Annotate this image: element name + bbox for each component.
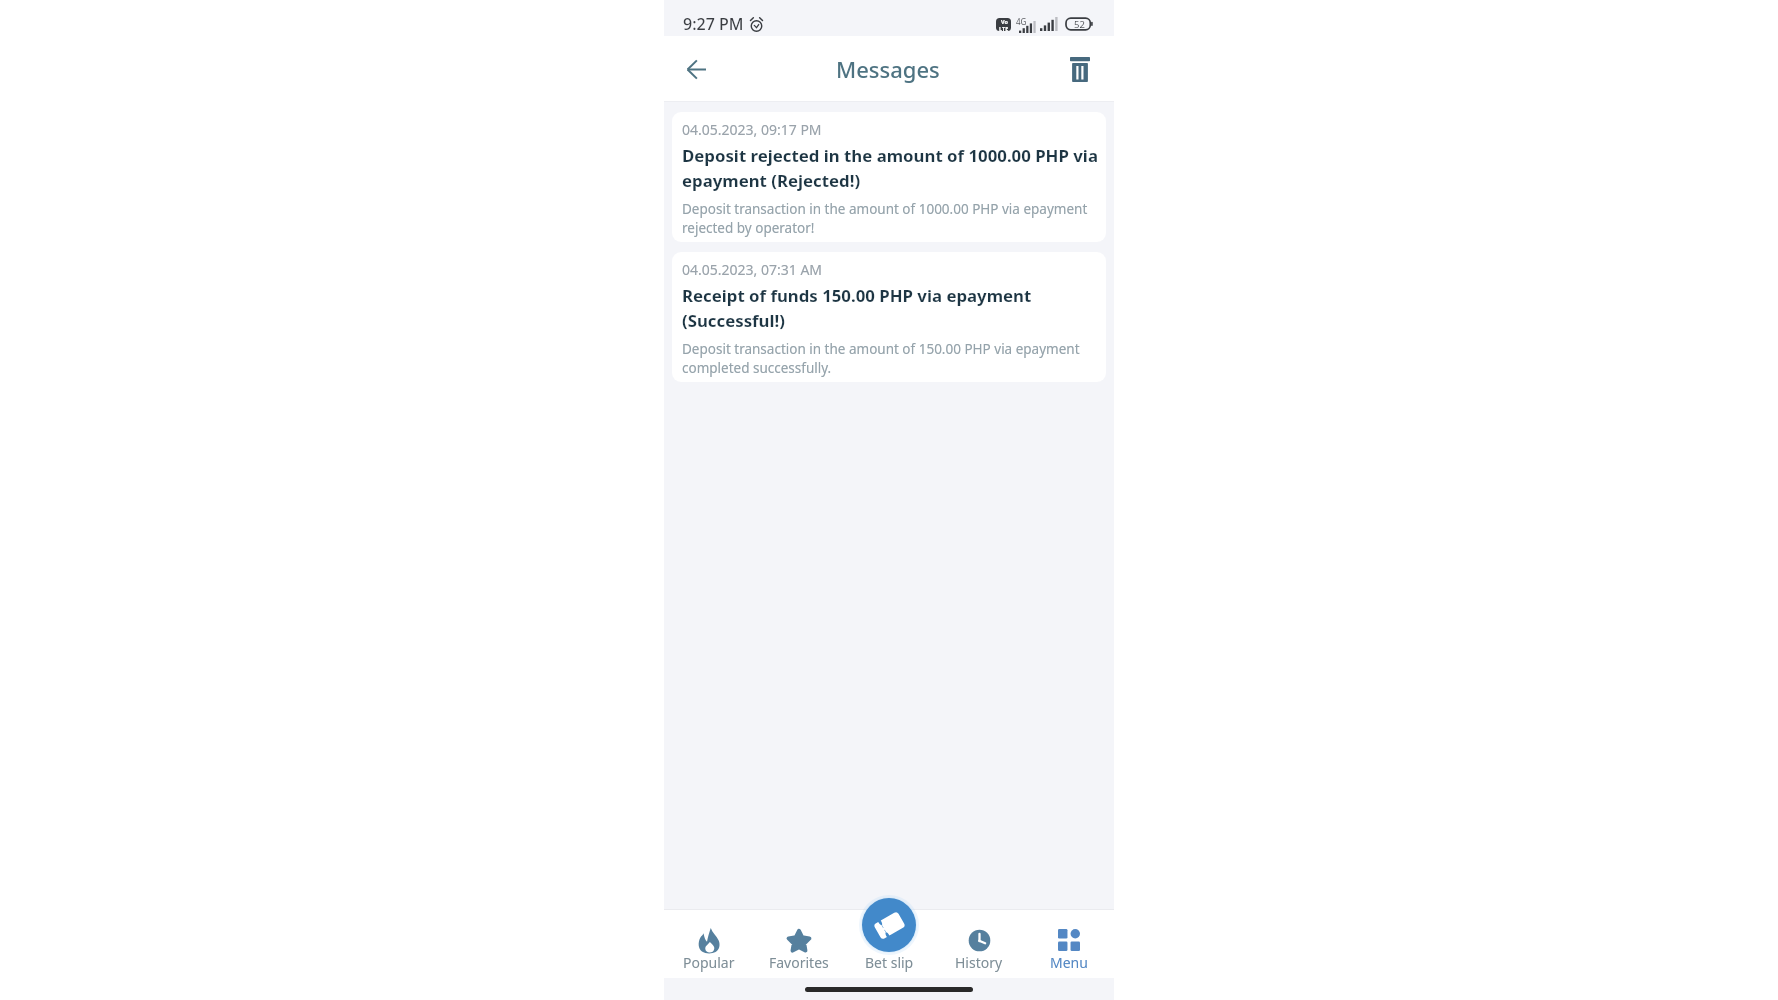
button[interactable]: Menu xyxy=(1024,909,1114,978)
button[interactable]: Popular xyxy=(664,909,754,978)
button[interactable]: Bet slip xyxy=(862,898,916,952)
button[interactable]: History xyxy=(934,909,1024,978)
button[interactable]: 04.05.2023, 09:17 PM xyxy=(672,112,1106,242)
button[interactable]: 04.05.2023, 07:31 AM xyxy=(672,252,1106,382)
staticText: Favorites xyxy=(769,953,829,972)
button[interactable]: Favorites xyxy=(754,909,844,978)
staticText: 04.05.2023, 09:17 PM xyxy=(682,120,822,139)
staticText: Popular xyxy=(683,953,735,972)
button[interactable]: Delete all messages xyxy=(1057,46,1103,92)
staticText: 9:27 PM xyxy=(683,13,744,35)
button[interactable]: Back xyxy=(673,46,719,92)
staticText: Bet slip xyxy=(865,953,914,972)
staticText: Deposit transaction in the amount of 150… xyxy=(682,340,1099,376)
staticText: Deposit transaction in the amount of 100… xyxy=(682,200,1099,236)
staticText: Menu xyxy=(1050,953,1088,972)
staticText: Messages xyxy=(836,54,940,84)
button[interactable]: Bet slip xyxy=(844,909,934,978)
staticText: History xyxy=(955,953,1003,972)
staticText: Vo xyxy=(1001,18,1008,25)
staticText: Receipt of funds 150.00 PHP via epayment… xyxy=(682,284,1099,332)
staticText: 52 xyxy=(1074,18,1085,31)
staticText: 04.05.2023, 07:31 AM xyxy=(682,260,823,279)
staticText: Deposit rejected in the amount of 1000.0… xyxy=(682,144,1099,192)
staticText: 4G xyxy=(1016,16,1027,27)
staticText: LTE xyxy=(999,25,1009,31)
